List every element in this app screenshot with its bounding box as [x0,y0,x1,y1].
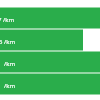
button[interactable]: 5 /km [0,30,100,51]
button[interactable]: /km [0,74,100,95]
staticText: /km [4,60,16,68]
staticText: 7 /km [0,16,15,24]
staticText: /km [4,82,16,90]
button[interactable]: /km [0,52,100,73]
staticText: 5 /km [0,38,16,46]
button[interactable]: 7 /km [0,8,100,29]
